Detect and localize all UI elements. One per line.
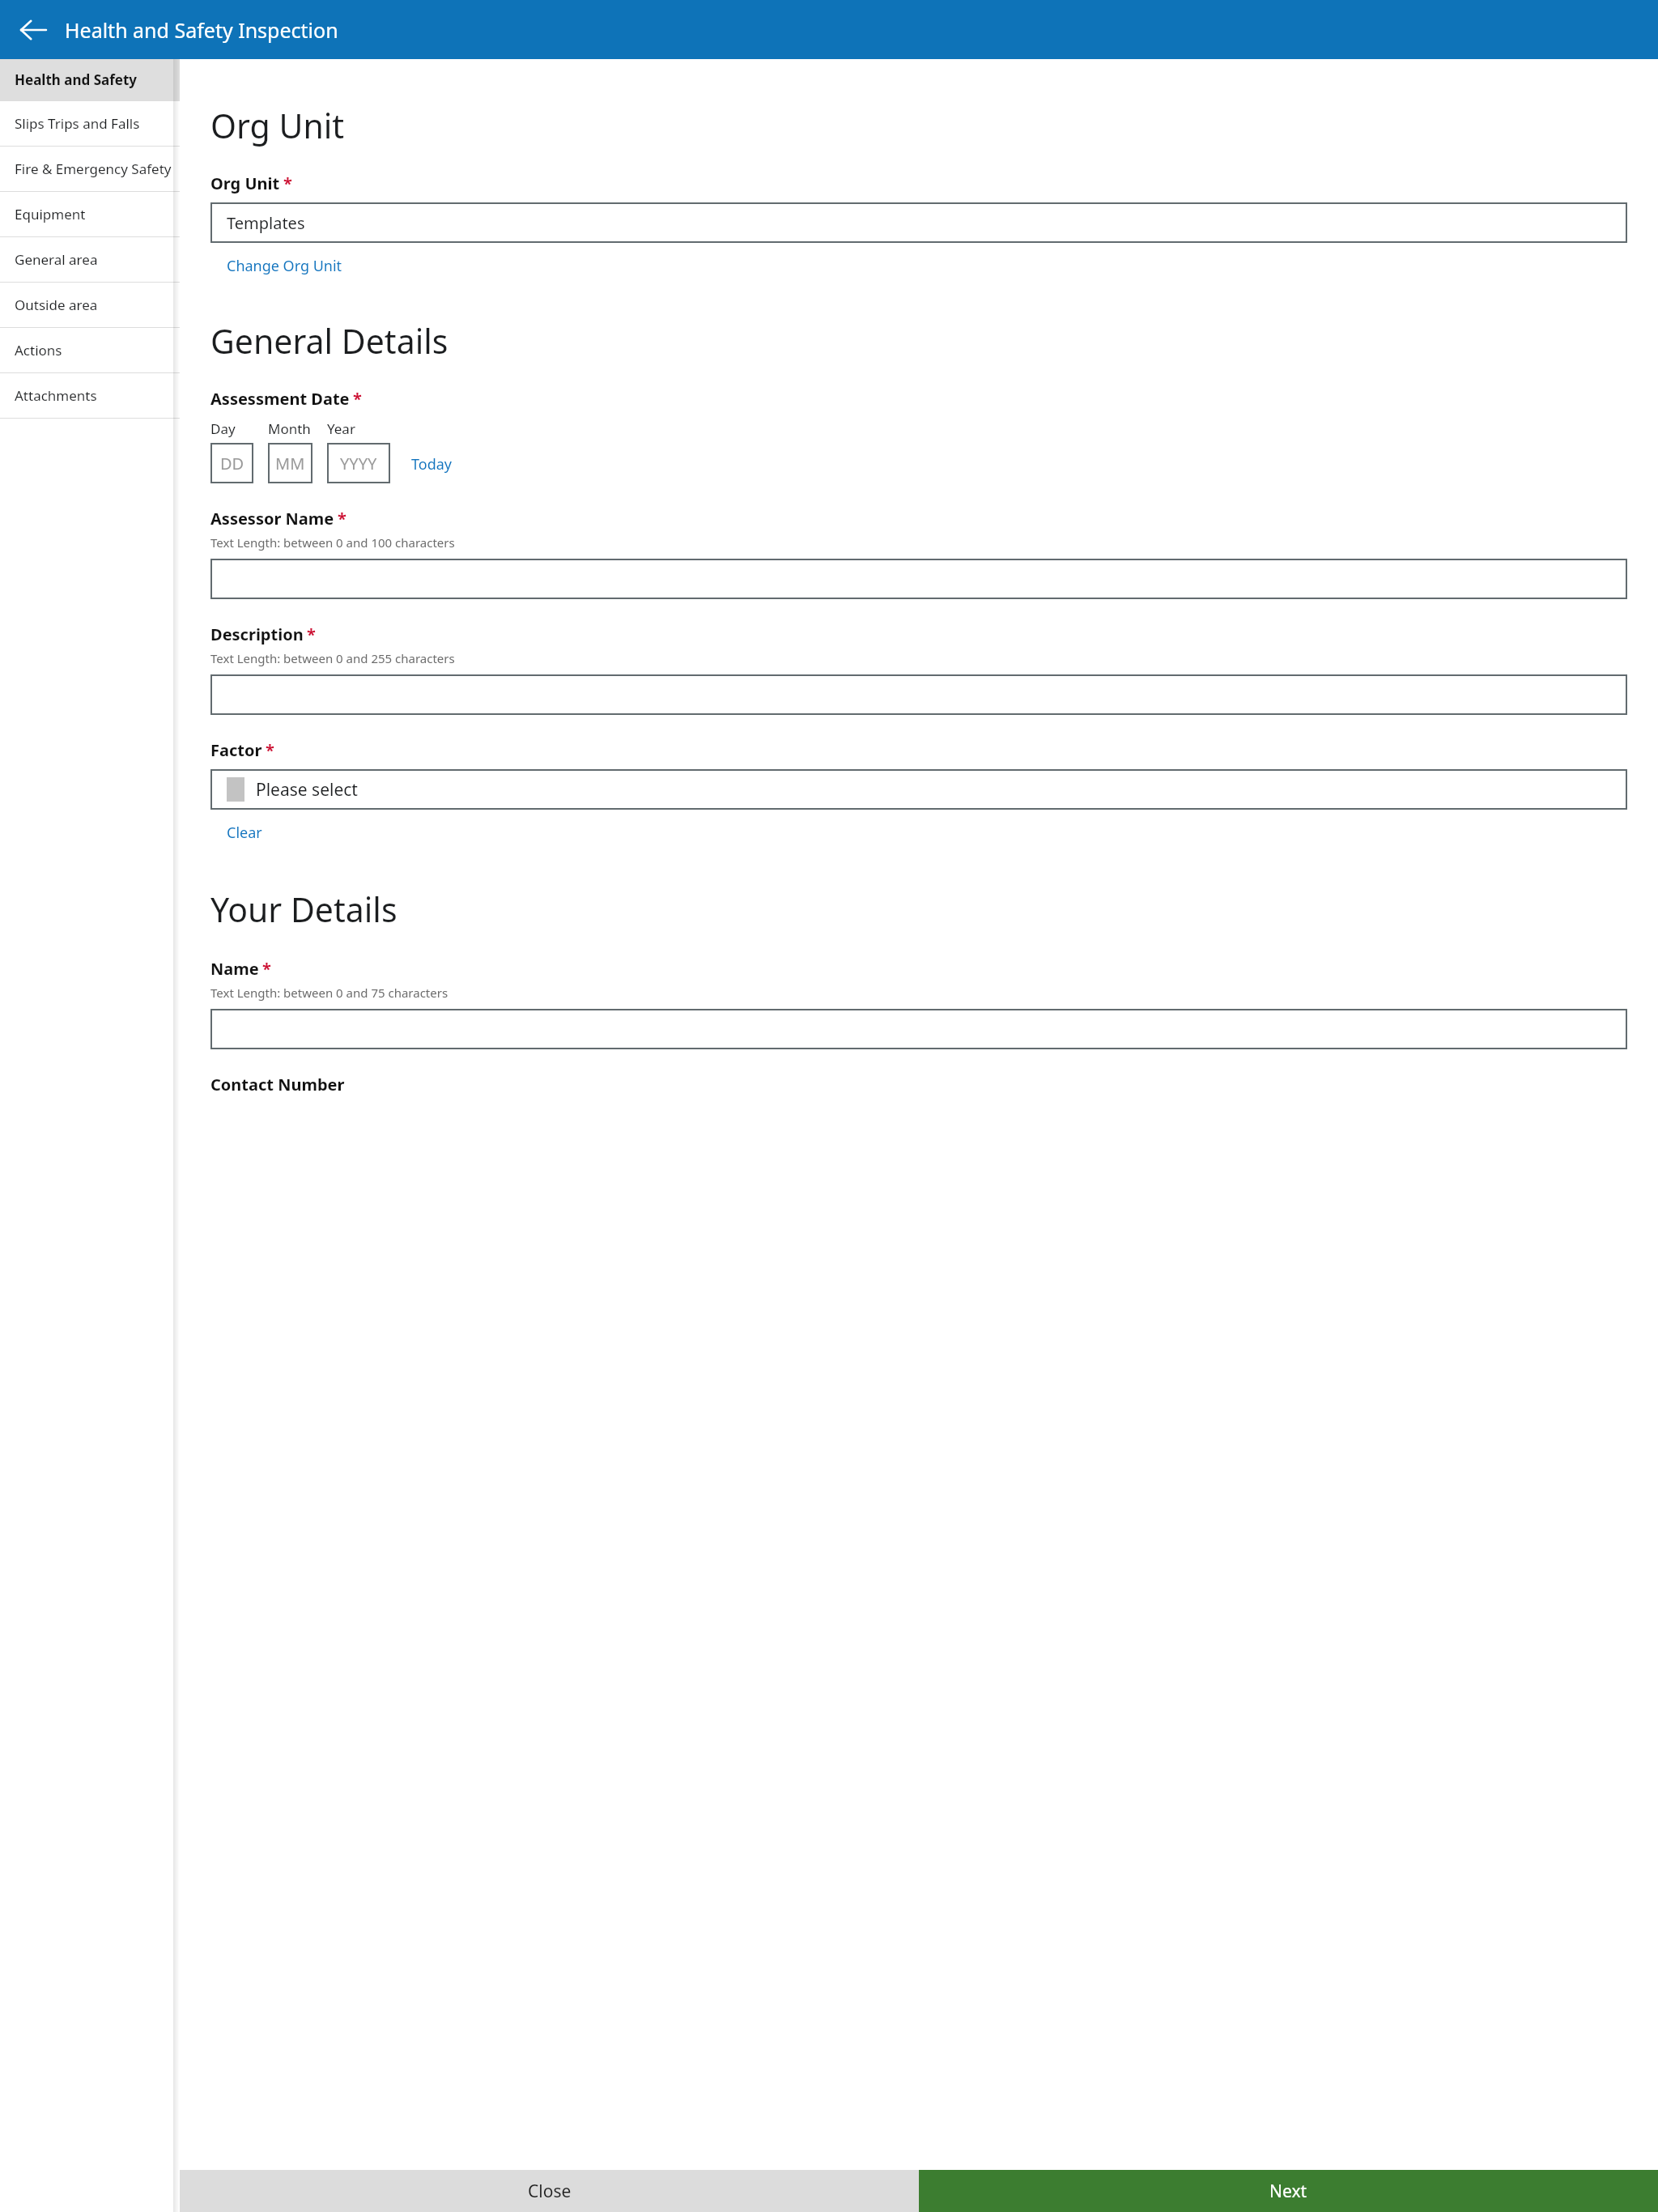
staticText: Text Length: between 0 and 100 character… xyxy=(210,534,455,551)
staticText: Your Details xyxy=(210,887,397,932)
staticText: Close xyxy=(528,2180,572,2203)
staticText: Name xyxy=(210,958,259,980)
staticText: Contact Number xyxy=(210,1074,345,1095)
button[interactable]: MM xyxy=(268,443,312,483)
button[interactable]: Equipment xyxy=(0,192,180,236)
button[interactable]: Health and Safety Inspection xyxy=(0,59,180,100)
staticText: Fire & Emergency Safety xyxy=(15,160,172,178)
staticText: * xyxy=(262,958,271,980)
button[interactable]: Attachments xyxy=(0,373,180,418)
staticText: Next xyxy=(1269,2180,1307,2203)
staticText: General Details xyxy=(210,318,449,364)
staticText: Month xyxy=(268,419,311,438)
staticText: Text Length: between 0 and 75 characters xyxy=(210,985,449,1001)
staticText: * xyxy=(307,623,316,645)
staticText: Please select xyxy=(256,778,358,802)
button[interactable] xyxy=(210,674,1627,715)
staticText: Assessor Name xyxy=(210,508,334,530)
button[interactable]: Outside area xyxy=(0,283,180,327)
staticText: Clear xyxy=(227,823,262,843)
button[interactable]: YYYY xyxy=(327,443,390,483)
staticText: Text Length: between 0 and 255 character… xyxy=(210,650,455,666)
staticText: Description xyxy=(210,623,304,645)
staticText: Org Unit xyxy=(210,172,280,194)
staticText: Slips Trips and Falls xyxy=(15,114,140,133)
staticText: General area xyxy=(15,250,98,269)
staticText: Factor xyxy=(210,739,262,761)
staticText: Equipment xyxy=(15,205,86,223)
button[interactable]: Templates xyxy=(210,202,1627,243)
staticText: Health and Safety Inspection xyxy=(15,70,180,89)
button[interactable]: Close xyxy=(180,2170,919,2212)
staticText: Attachments xyxy=(15,386,97,405)
staticText: Change Org Unit xyxy=(227,256,342,276)
staticText: * xyxy=(283,172,292,194)
button[interactable] xyxy=(210,1009,1627,1049)
button[interactable]: Next xyxy=(919,2170,1658,2212)
button[interactable]: DD xyxy=(210,443,253,483)
staticText: Templates xyxy=(227,212,305,234)
staticText: MM xyxy=(275,453,305,474)
staticText: * xyxy=(266,739,274,761)
staticText: YYYY xyxy=(340,453,377,474)
button[interactable]: Change Org Unit xyxy=(227,256,342,276)
staticText: Health and Safety Inspection xyxy=(65,16,338,44)
staticText: * xyxy=(338,508,346,530)
staticText: Year xyxy=(327,419,355,438)
staticText: * xyxy=(353,388,362,410)
staticText: Today xyxy=(411,454,452,474)
staticText: Org Unit xyxy=(210,103,345,148)
button[interactable] xyxy=(210,559,1627,599)
button[interactable]: Fire & Emergency Safety xyxy=(0,147,180,191)
staticText: Day xyxy=(210,419,236,438)
staticText: DD xyxy=(220,453,244,474)
staticText: Actions xyxy=(15,341,62,359)
button[interactable]: Today xyxy=(411,454,452,474)
button[interactable]: Back xyxy=(8,5,58,55)
staticText: Assessment Date xyxy=(210,388,350,410)
button[interactable]: Please select xyxy=(210,769,1627,810)
button[interactable]: Clear xyxy=(227,823,262,843)
staticText: Outside area xyxy=(15,296,98,314)
button[interactable]: Slips Trips and Falls xyxy=(0,101,180,146)
button[interactable]: Actions xyxy=(0,328,180,372)
button[interactable]: General area xyxy=(0,237,180,282)
